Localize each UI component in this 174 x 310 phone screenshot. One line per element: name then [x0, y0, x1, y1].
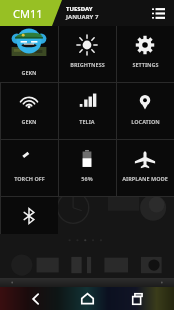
- staticText: LOCATION: [131, 118, 160, 125]
- button[interactable]: 56%: [58, 140, 116, 196]
- button[interactable]: BRIGHTNESS: [58, 26, 116, 82]
- button[interactable]: Quick settings list: [148, 3, 168, 23]
- button[interactable]: Home: [72, 287, 102, 310]
- staticText: GEKN: [21, 118, 37, 125]
- button[interactable]: AIRPLANE MODE: [116, 140, 174, 196]
- button[interactable]: GEKN: [0, 26, 58, 82]
- staticText: BRIGHTNESS: [70, 61, 105, 68]
- button[interactable]: Back: [21, 287, 51, 310]
- staticText: GEKN: [21, 69, 37, 76]
- staticText: SETTINGS: [132, 61, 159, 68]
- staticText: TUESDAY: [66, 5, 93, 13]
- button[interactable]: TELIA: [58, 83, 116, 139]
- staticText: TORCH OFF: [14, 175, 45, 182]
- button[interactable]: TORCH OFF: [0, 140, 58, 196]
- staticText: CM11: [13, 6, 43, 21]
- staticText: TELIA: [79, 118, 95, 125]
- staticText: AIRPLANE MODE: [122, 175, 168, 182]
- button[interactable]: BLUETOOTH OFF: [0, 197, 58, 234]
- staticText: JANUARY 7: [66, 13, 99, 21]
- button[interactable]: CM11: [0, 0, 62, 26]
- button[interactable]: SETTINGS: [116, 26, 174, 82]
- button[interactable]: Recents: [123, 287, 153, 310]
- staticText: 56%: [81, 175, 93, 182]
- button[interactable]: GEKN: [0, 83, 58, 139]
- button[interactable]: LOCATION: [116, 83, 174, 139]
